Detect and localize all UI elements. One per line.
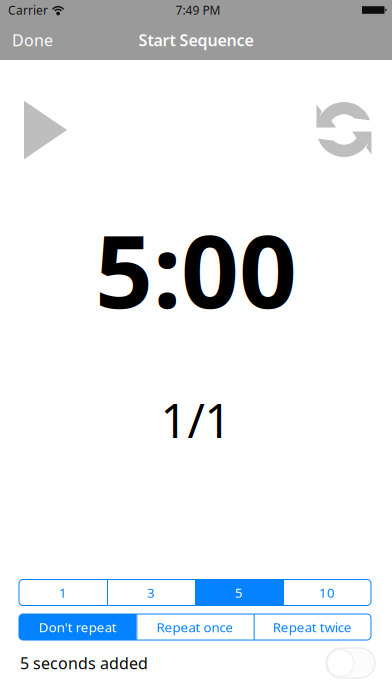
staticText: 5	[235, 584, 243, 601]
staticText: Repeat twice	[273, 618, 352, 636]
staticText: 1/1	[160, 389, 231, 451]
staticText: Carrier	[8, 2, 48, 18]
staticText: Start Sequence	[138, 29, 253, 51]
staticText: Repeat once	[156, 618, 233, 636]
staticText: Done	[12, 29, 53, 51]
staticText: 7:49 PM	[175, 2, 220, 18]
button[interactable]: Repeat	[316, 102, 372, 158]
staticText: 5 seconds added	[20, 652, 148, 674]
button[interactable]: Done	[0, 20, 65, 60]
button[interactable]: Repeat twice	[254, 614, 371, 640]
staticText: 1	[59, 584, 67, 601]
button[interactable]: 3	[107, 579, 195, 605]
button[interactable]: 5	[195, 579, 283, 605]
staticText: Don't repeat	[39, 618, 117, 636]
button[interactable]: 1	[19, 579, 107, 605]
staticText: 5:00	[95, 202, 297, 336]
button[interactable]: Play	[24, 101, 67, 159]
staticText: 3	[147, 584, 155, 601]
staticText: 10	[319, 584, 335, 601]
button[interactable]: Don't repeat	[19, 614, 136, 640]
button[interactable]: 5 seconds added	[326, 648, 375, 678]
button[interactable]: 10	[283, 579, 371, 605]
button[interactable]: Repeat once	[136, 614, 254, 640]
